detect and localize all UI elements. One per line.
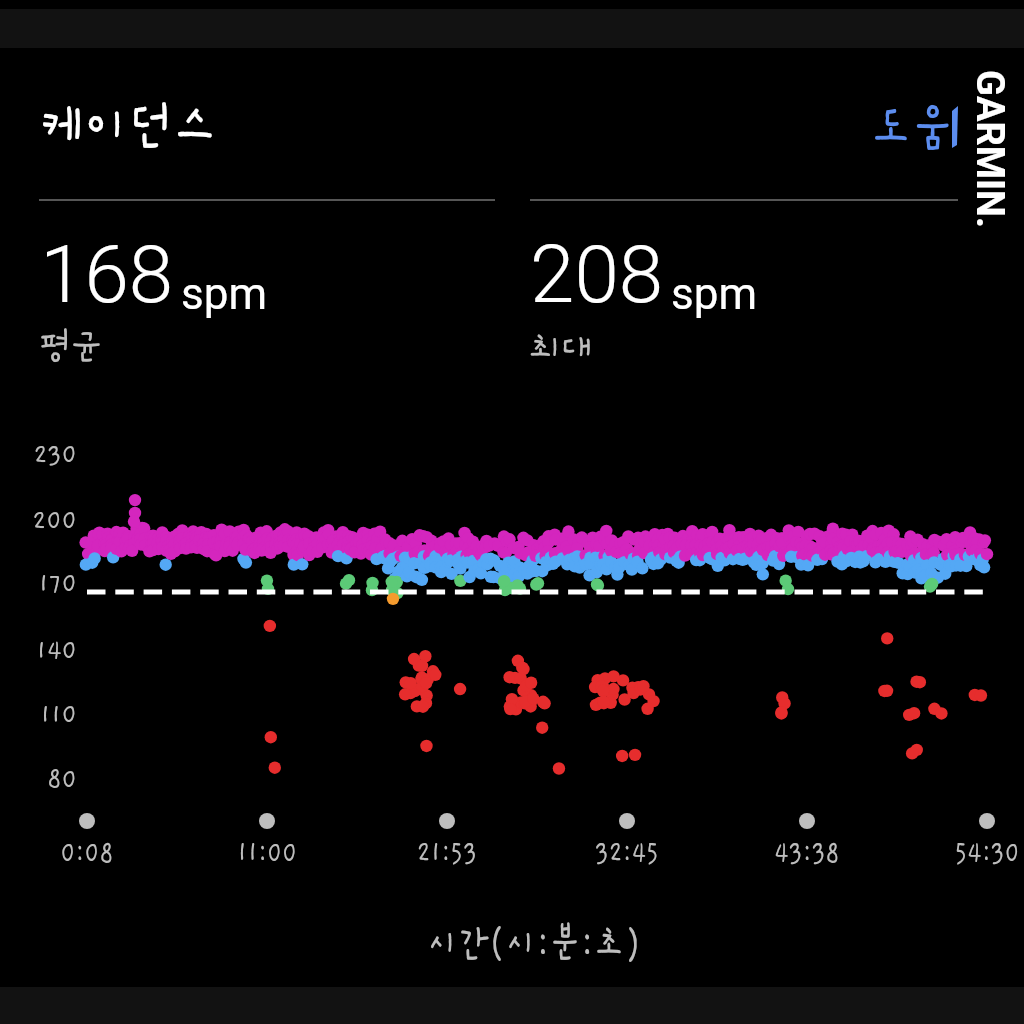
staticText: 케이던스 [40,97,217,159]
staticText: 43:38 [744,837,870,870]
staticText: 32:45 [564,837,690,870]
button[interactable]: 도움말 [870,101,968,163]
staticText: 110 [0,699,77,730]
staticText: 170 [0,568,77,599]
staticText: spm [671,268,758,320]
staticText: 11:00 [204,837,330,870]
staticText: 208 [530,228,664,322]
staticText: 200 [0,505,77,536]
button[interactable]: 케이던스 그래프 [20,420,1004,880]
staticText: 168 [40,228,174,322]
staticText: 140 [0,635,77,666]
staticText: 230 [0,439,77,470]
staticText: 시간(시:분:초) [114,922,954,968]
staticText: 21:53 [384,837,510,870]
staticText: 도움 [870,101,954,159]
staticText: 54:30 [924,837,1024,870]
staticText: 최대 [530,328,593,369]
staticText: 0:08 [24,837,150,870]
staticText: 평균 [40,328,103,369]
staticText: spm [181,268,268,320]
staticText: 80 [0,764,77,795]
staticText: GARMIN. [967,70,1012,229]
